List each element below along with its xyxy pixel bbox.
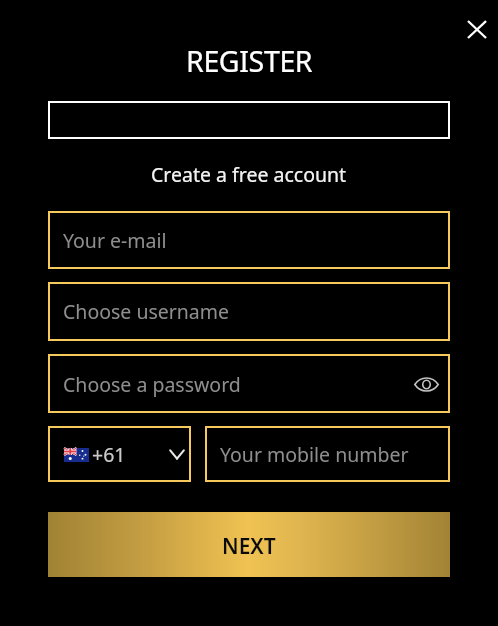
button[interactable]: Choose username: [48, 282, 450, 341]
other: Select country code: [169, 449, 185, 460]
staticText: NEXT: [222, 532, 276, 561]
button[interactable]: [48, 101, 450, 139]
button[interactable]: Show password: [411, 369, 441, 399]
staticText: +61: [92, 441, 126, 468]
button[interactable]: +61: [48, 426, 191, 482]
staticText: Your mobile number: [220, 441, 409, 468]
staticText: REGISTER: [186, 42, 313, 81]
button[interactable]: Close: [456, 8, 498, 50]
button[interactable]: NEXT: [48, 512, 450, 577]
staticText: Your e-mail: [63, 227, 167, 254]
staticText: Create a free account: [151, 161, 347, 188]
button[interactable]: Choose a password: [48, 354, 450, 413]
staticText: Choose a password: [63, 371, 411, 398]
button[interactable]: Your mobile number: [205, 426, 450, 482]
button[interactable]: Your e-mail: [48, 211, 450, 269]
staticText: Choose username: [63, 298, 230, 325]
